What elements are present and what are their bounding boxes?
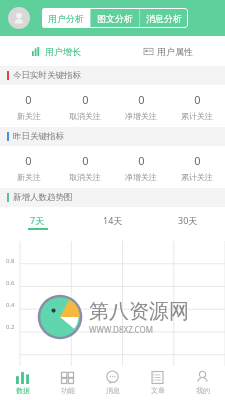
staticText: 图文分析 xyxy=(97,13,133,24)
button[interactable]: 0 xyxy=(113,146,169,188)
staticText: 用户分析 xyxy=(48,13,84,24)
staticText: 0 xyxy=(25,92,32,107)
button[interactable]: 功能 xyxy=(45,366,90,400)
staticText: 新关注 xyxy=(17,172,41,182)
staticText: 0 xyxy=(82,92,89,107)
button[interactable]: 14天 xyxy=(75,207,150,233)
button[interactable]: 图文分析 xyxy=(91,8,139,28)
button[interactable]: Profile xyxy=(8,7,30,29)
button[interactable]: 0 xyxy=(57,85,113,127)
staticText: 新关注 xyxy=(17,111,41,121)
button[interactable]: 用户分析 xyxy=(42,8,90,28)
staticText: 消息 xyxy=(106,386,120,395)
staticText: 数据 xyxy=(16,386,30,395)
button[interactable]: 7天 xyxy=(0,207,75,233)
button[interactable]: 0 xyxy=(0,85,57,127)
staticText: 0 xyxy=(82,153,89,168)
button[interactable]: 用户增长 xyxy=(0,36,112,66)
staticText: 用户属性 xyxy=(157,46,193,57)
staticText: 用户增长 xyxy=(45,46,81,57)
staticText: 今日实时关键指标 xyxy=(13,70,81,81)
button[interactable]: 0 xyxy=(57,146,113,188)
staticText: 累计关注 xyxy=(181,172,213,182)
staticText: 7天 xyxy=(30,214,45,226)
staticText: 0 xyxy=(138,153,145,168)
staticText: 0.2 xyxy=(6,323,15,331)
staticText: WWW.D8XZ.COM xyxy=(89,324,153,335)
staticText: 第八资源网 xyxy=(89,299,189,324)
button[interactable]: 用户属性 xyxy=(112,36,225,66)
staticText: 14天 xyxy=(103,214,123,226)
staticText: 净增关注 xyxy=(125,172,157,182)
button[interactable]: 0 xyxy=(113,85,169,127)
staticText: 累计关注 xyxy=(181,111,213,121)
staticText: 消息分析 xyxy=(146,13,182,24)
staticText: 30天 xyxy=(178,214,198,226)
staticText: 昨日关键指标 xyxy=(13,131,64,142)
button[interactable]: 30天 xyxy=(150,207,225,233)
staticText: 0 xyxy=(194,153,201,168)
staticText: 我的 xyxy=(196,386,210,395)
staticText: 0.4 xyxy=(6,301,15,309)
staticText: 新增人数趋势图 xyxy=(13,192,73,203)
staticText: 0 xyxy=(25,153,32,168)
button[interactable]: 0 xyxy=(169,146,225,188)
button[interactable]: 消息分析 xyxy=(140,8,188,28)
button[interactable]: 我的 xyxy=(180,366,225,400)
button[interactable]: 文章 xyxy=(135,366,180,400)
button[interactable]: 消息 xyxy=(90,366,135,400)
staticText: 0.8 xyxy=(6,257,15,265)
staticText: 0 xyxy=(194,92,201,107)
button[interactable]: 0 xyxy=(169,85,225,127)
staticText: 取消关注 xyxy=(69,172,101,182)
staticText: 净增关注 xyxy=(125,111,157,121)
staticText: 功能 xyxy=(61,386,75,395)
button[interactable]: 0 xyxy=(0,146,57,188)
staticText: 取消关注 xyxy=(69,111,101,121)
staticText: 0.6 xyxy=(6,279,15,287)
button[interactable]: 数据 xyxy=(0,366,45,400)
staticText: 文章 xyxy=(151,386,165,395)
staticText: 0 xyxy=(138,92,145,107)
